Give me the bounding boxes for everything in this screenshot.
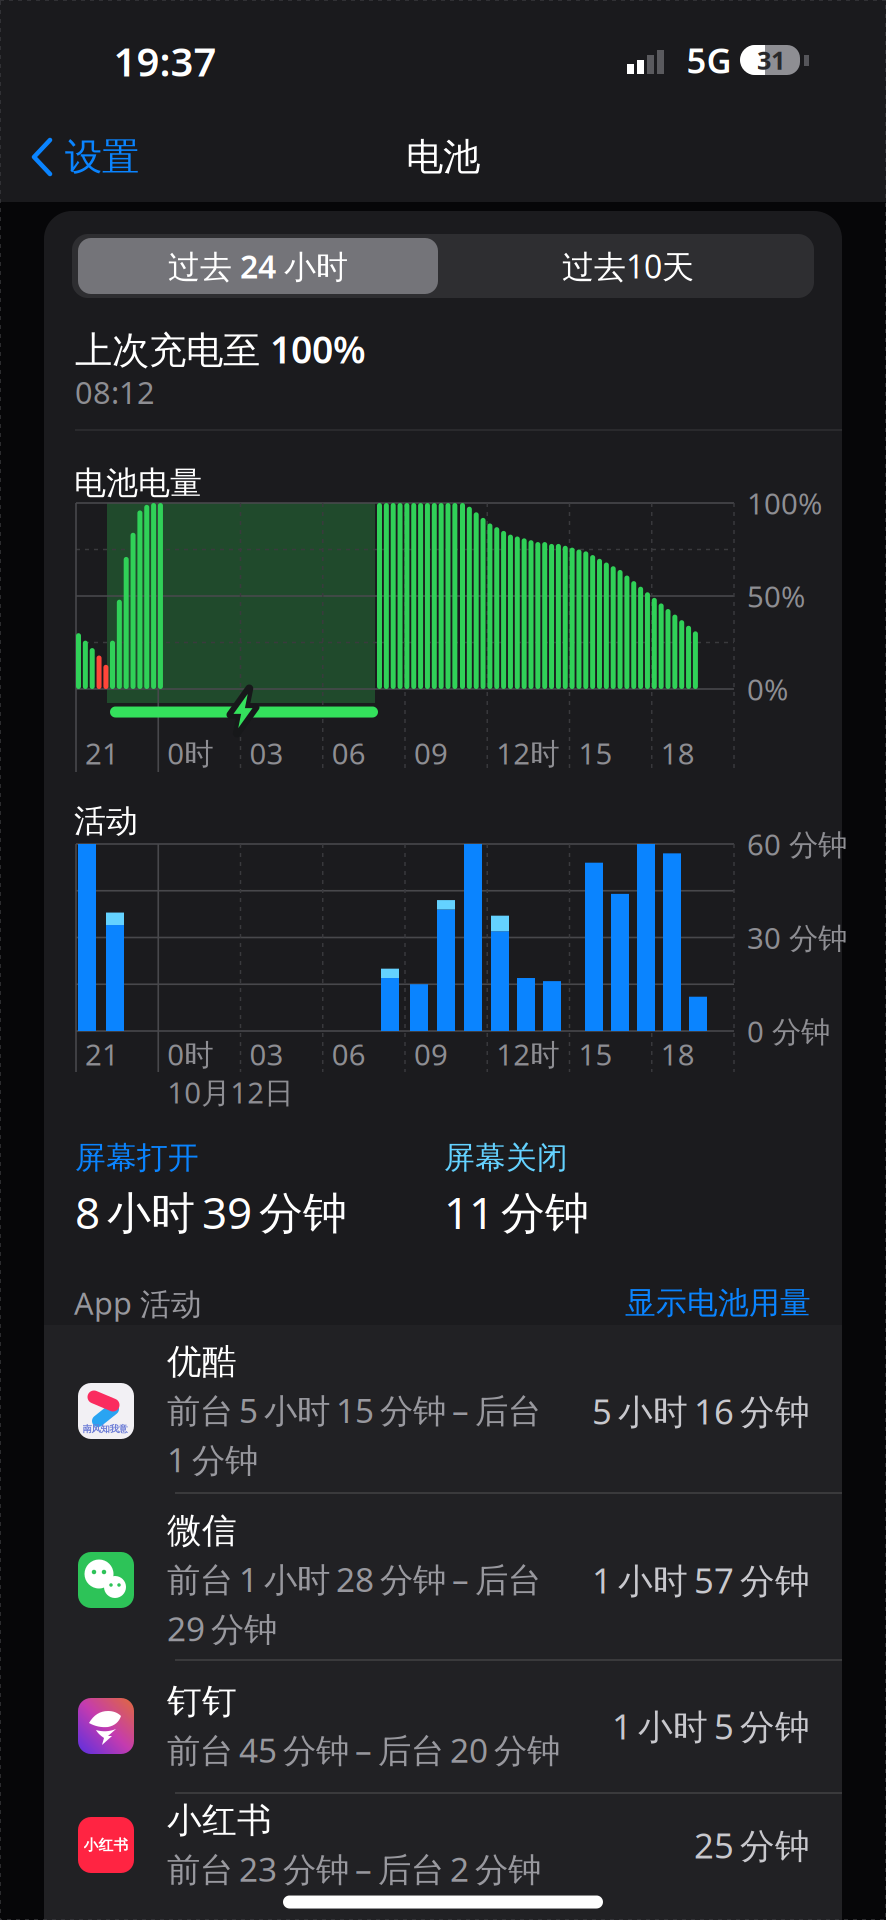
- staticText: 电池: [406, 134, 480, 180]
- staticText: 过去 24 小时: [168, 245, 348, 287]
- staticText: 21: [85, 1034, 119, 1073]
- staticText: 06: [332, 1034, 366, 1073]
- staticText: 100%: [747, 483, 822, 522]
- staticText: 小红书: [167, 1799, 272, 1842]
- staticText: 18: [661, 1034, 695, 1073]
- staticText: 50%: [747, 576, 805, 615]
- staticText: 15: [578, 1034, 612, 1073]
- button[interactable]: 小红书: [44, 1778, 842, 1912]
- staticText: 0%: [747, 669, 788, 708]
- staticText: 活动: [74, 801, 138, 841]
- staticText: 5G: [686, 37, 731, 83]
- staticText: 08:12: [75, 372, 155, 412]
- staticText: 10月12日: [167, 1072, 293, 1111]
- staticText: 0时: [167, 733, 213, 772]
- staticText: 18: [661, 733, 695, 772]
- staticText: 1 小时 5 分钟: [612, 1703, 810, 1749]
- staticText: 显示电池用量: [625, 1284, 811, 1322]
- button[interactable]: 微信: [44, 1496, 842, 1663]
- staticText: 设置: [65, 134, 139, 180]
- staticText: 03: [249, 1034, 283, 1073]
- button[interactable]: 过去10天: [448, 236, 808, 296]
- staticText: 屏幕打开: [75, 1139, 199, 1177]
- staticText: 60 分钟: [747, 824, 847, 863]
- staticText: 09: [414, 733, 448, 772]
- staticText: 0时: [167, 1034, 213, 1073]
- button[interactable]: 设置: [31, 135, 139, 179]
- staticText: 30 分钟: [747, 918, 847, 957]
- button[interactable]: 过去 24 小时: [76, 236, 440, 296]
- staticText: 南风知我意: [82, 1423, 127, 1435]
- staticText: 钉钉: [167, 1680, 237, 1723]
- staticText: 屏幕关闭: [444, 1139, 568, 1177]
- staticText: 上次充电至 100%: [75, 324, 366, 374]
- button[interactable]: 南风知我意: [44, 1327, 842, 1495]
- staticText: 前台 45 分钟 – 后台 20 分钟: [167, 1728, 560, 1772]
- staticText: 12时: [496, 733, 559, 772]
- staticText: 前台 1 小时 28 分钟 – 后台: [167, 1557, 541, 1601]
- staticText: App 活动: [74, 1283, 202, 1323]
- staticText: 优酷: [167, 1340, 237, 1383]
- staticText: 微信: [167, 1509, 237, 1552]
- button[interactable]: 显示电池用量: [625, 1284, 811, 1322]
- staticText: 过去10天: [562, 245, 694, 287]
- staticText: 29 分钟: [167, 1606, 277, 1651]
- staticText: 前台 23 分钟 – 后台 2 分钟: [167, 1847, 541, 1891]
- staticText: 0 分钟: [747, 1011, 830, 1050]
- staticText: 电池电量: [74, 463, 202, 503]
- staticText: 8 小时 39 分钟: [75, 1183, 347, 1241]
- staticText: 25 分钟: [694, 1822, 810, 1868]
- staticText: 19:37: [113, 34, 216, 87]
- staticText: 5 小时 16 分钟: [592, 1388, 810, 1434]
- staticText: 31: [757, 43, 785, 77]
- button[interactable]: 钉钉: [44, 1659, 842, 1792]
- staticText: 03: [249, 733, 283, 772]
- staticText: 09: [414, 1034, 448, 1073]
- staticText: 15: [578, 733, 612, 772]
- staticText: 06: [332, 733, 366, 772]
- staticText: 1 小时 57 分钟: [592, 1557, 810, 1603]
- staticText: 11 分钟: [444, 1183, 589, 1241]
- staticText: 前台 5 小时 15 分钟 – 后台: [167, 1388, 541, 1432]
- staticText: 12时: [496, 1034, 559, 1073]
- staticText: 1 分钟: [167, 1437, 258, 1482]
- staticText: 21: [85, 733, 119, 772]
- staticText: 小红书: [83, 1836, 128, 1854]
